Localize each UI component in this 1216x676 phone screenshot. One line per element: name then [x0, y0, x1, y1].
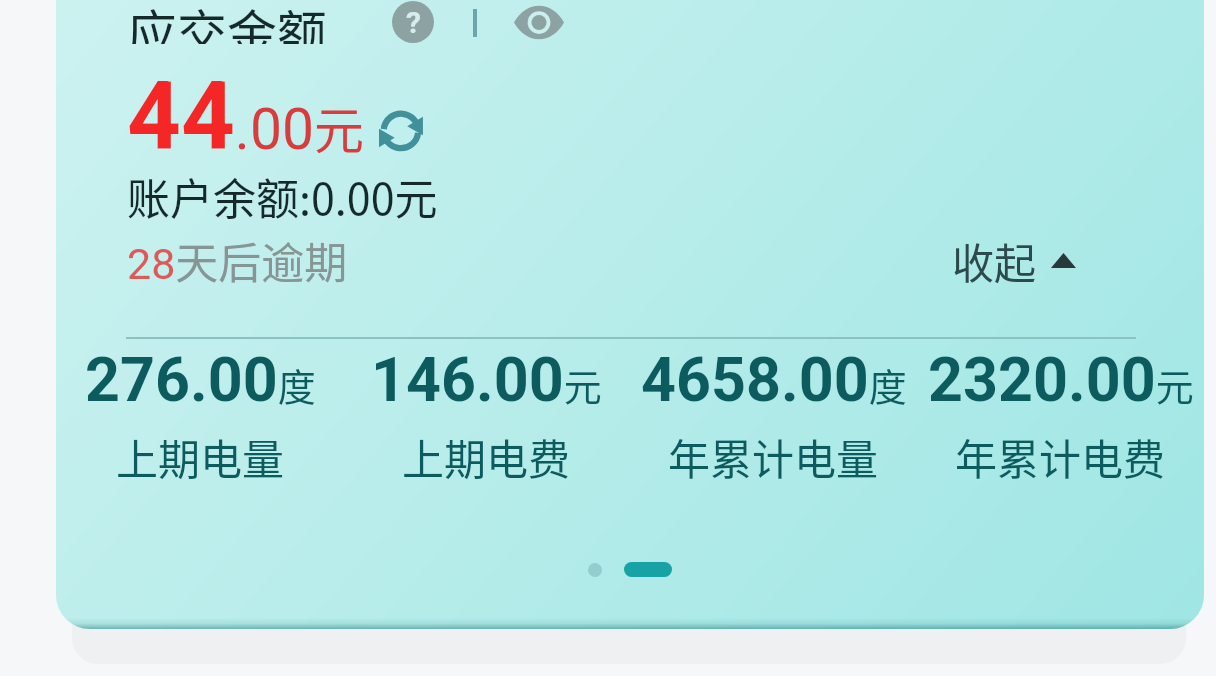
- staticText: 上期电费: [402, 426, 571, 487]
- staticText: 28天后逾期: [127, 229, 348, 291]
- staticText: 年累计电费: [955, 426, 1166, 487]
- staticText: 上期电量: [116, 426, 285, 487]
- staticText: ?: [406, 5, 421, 40]
- button[interactable]: [624, 562, 672, 577]
- staticText: 2320.00元: [928, 344, 1194, 415]
- staticText: 4658.00度: [641, 344, 907, 415]
- staticText: 应交金额: [127, 0, 327, 44]
- staticText: 收起: [952, 230, 1037, 291]
- button[interactable]: Toggle amount visibility: [510, 0, 568, 44]
- button[interactable]: Help: [392, 1, 434, 43]
- staticText: 44.00元: [127, 62, 364, 172]
- staticText: 账户余额:0.00元: [127, 165, 438, 227]
- button[interactable]: 收起: [952, 230, 1076, 291]
- staticText: 年累计电量: [668, 426, 879, 487]
- button[interactable]: 应交金额: [56, 0, 1204, 629]
- button[interactable]: [588, 563, 602, 577]
- staticText: 146.00元: [371, 344, 602, 415]
- staticText: 276.00度: [85, 344, 316, 415]
- button[interactable]: Refresh: [378, 108, 426, 156]
